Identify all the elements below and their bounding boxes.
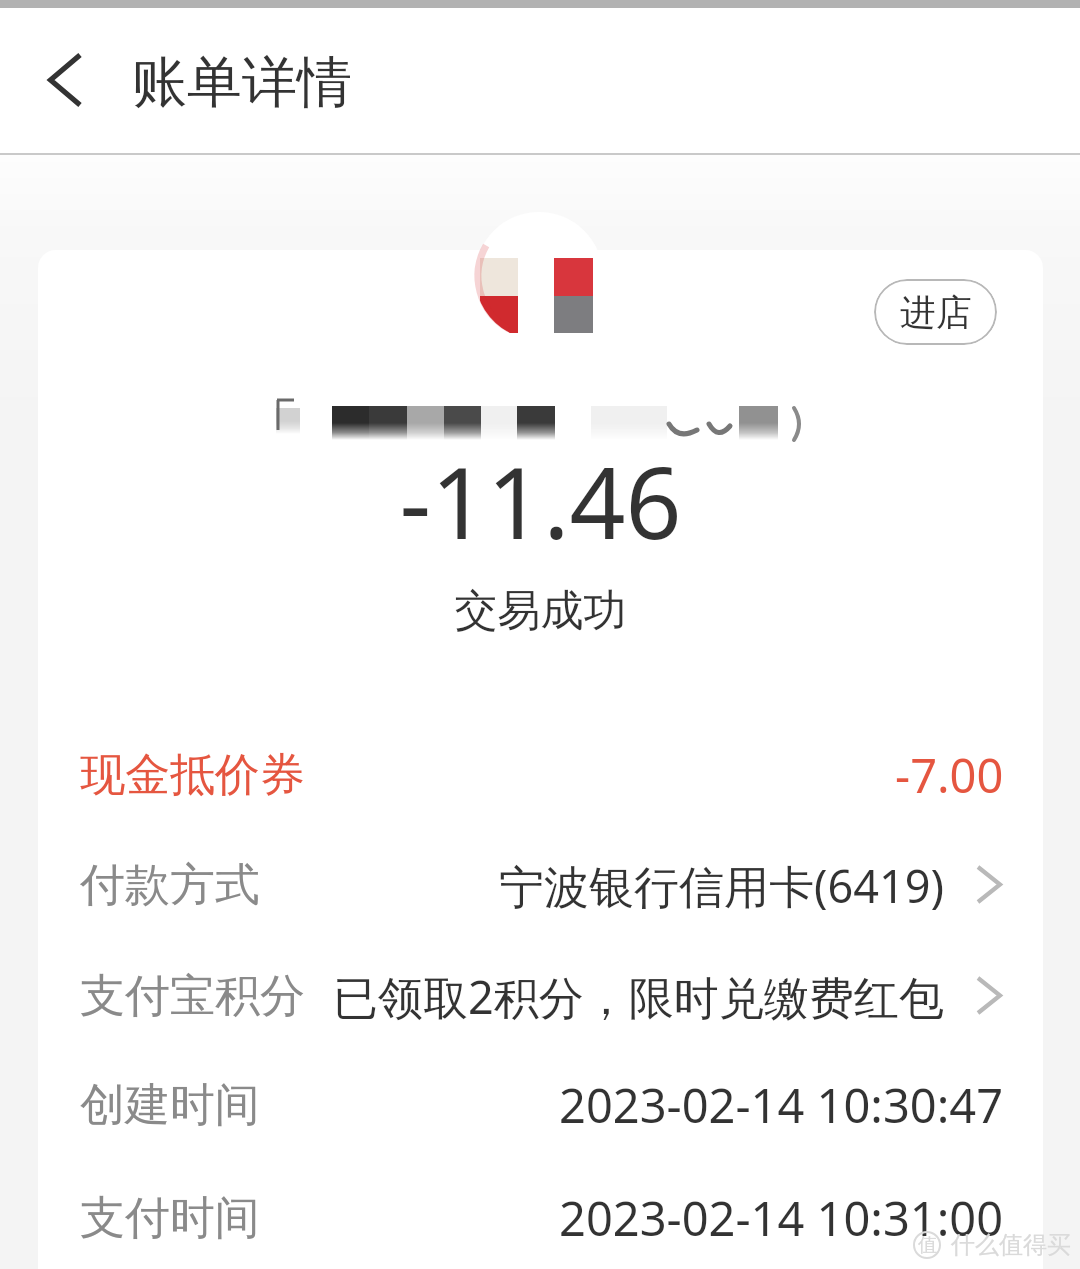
- staticText: 支付宝积分: [80, 968, 305, 1025]
- button[interactable]: 创建时间: [38, 1050, 1043, 1160]
- button[interactable]: 支付时间: [38, 1163, 1043, 1269]
- button[interactable]: 现金抵价券: [38, 720, 1043, 830]
- staticText: 账单详情: [132, 48, 352, 117]
- button[interactable]: 支付宝积分: [38, 941, 1043, 1051]
- staticText: 付款方式: [80, 857, 260, 914]
- staticText: 什么值得买: [951, 1230, 1071, 1260]
- staticText: 创建时间: [80, 1077, 260, 1134]
- other: Merchant logo: [470, 205, 610, 345]
- staticText: 2023-02-14 10:30:47: [559, 1073, 1004, 1137]
- staticText: 值: [918, 1233, 937, 1257]
- staticText: 支付时间: [80, 1190, 260, 1247]
- staticText: 交易成功: [38, 584, 1043, 638]
- staticText: 2023-02-14 10:31:00: [559, 1186, 1004, 1250]
- staticText: 已领取2积分，限时兑缴费红包: [333, 966, 944, 1027]
- staticText: 现金抵价券: [80, 747, 305, 804]
- button[interactable]: 进店: [874, 279, 997, 345]
- button[interactable]: Back: [19, 34, 111, 126]
- staticText: 进店: [900, 290, 972, 335]
- staticText: -7.00: [895, 743, 1004, 807]
- staticText: -11.46: [38, 434, 1043, 567]
- staticText: 宁波银行信用卡(6419): [499, 855, 944, 916]
- button[interactable]: 付款方式: [38, 830, 1043, 940]
